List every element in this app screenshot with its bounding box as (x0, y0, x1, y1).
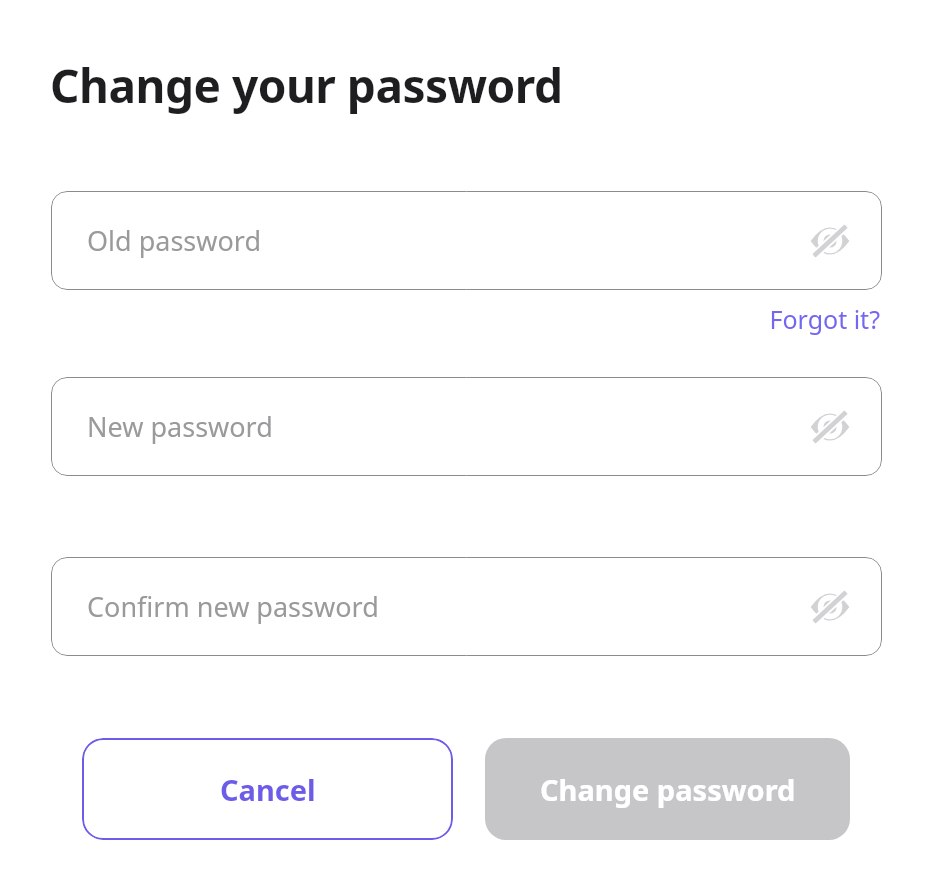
button[interactable]: Confirm new password (51, 557, 882, 656)
staticText: Old password (87, 222, 262, 259)
button[interactable]: New password (51, 377, 882, 476)
button[interactable]: Show password (808, 219, 852, 263)
staticText: Cancel (220, 770, 316, 809)
staticText: New password (87, 408, 273, 445)
button[interactable]: Cancel (82, 738, 453, 840)
staticText: Forgot it? (769, 302, 880, 336)
button[interactable]: Show password (808, 405, 852, 449)
staticText: Change your password (50, 54, 563, 117)
button[interactable]: Forgot it? (767, 300, 882, 338)
button[interactable]: Change password (485, 738, 850, 840)
staticText: Change password (540, 770, 796, 809)
staticText: Confirm new password (87, 588, 379, 625)
button[interactable]: Old password (51, 191, 882, 290)
button[interactable]: Show password (808, 585, 852, 629)
